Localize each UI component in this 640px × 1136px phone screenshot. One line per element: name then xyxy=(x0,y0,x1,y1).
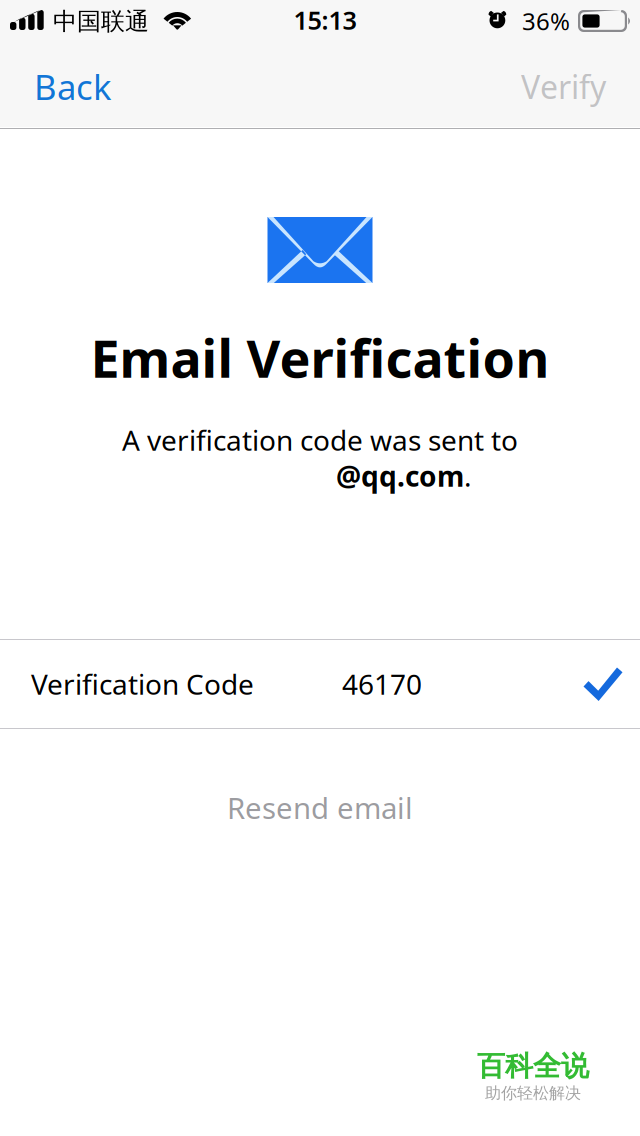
staticText: @qq.com. xyxy=(336,457,472,495)
staticText: A verification code was sent to xyxy=(122,421,518,459)
staticText: Email Verification xyxy=(90,323,549,392)
button[interactable]: Verify xyxy=(501,46,640,127)
staticText: Back xyxy=(34,63,112,109)
staticText: 46170 xyxy=(342,665,422,703)
staticText: Verify xyxy=(521,65,606,108)
staticText: 百科全说 xyxy=(477,1049,589,1083)
button[interactable]: Back xyxy=(0,46,132,127)
staticText: 36% xyxy=(522,5,570,37)
staticText: Resend email xyxy=(227,788,413,827)
staticText: Verification Code xyxy=(31,665,254,703)
button[interactable]: Resend email xyxy=(0,788,640,827)
staticText: 中国联通 xyxy=(53,7,149,36)
staticText: 15:13 xyxy=(293,3,356,37)
staticText: 助你轻松解决 xyxy=(485,1083,581,1103)
